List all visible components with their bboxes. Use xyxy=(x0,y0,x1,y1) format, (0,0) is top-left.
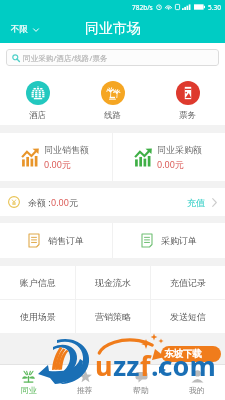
staticText: 同业 xyxy=(21,385,37,395)
button[interactable]: 推荐 xyxy=(57,364,113,400)
staticText: 同业采购/酒店/线路/票务 xyxy=(23,53,108,63)
staticText: 发送短信 xyxy=(170,311,206,322)
staticText: 0.00 xyxy=(51,196,69,208)
button[interactable]: 充值 xyxy=(184,193,220,212)
staticText: 使用场景 xyxy=(20,311,56,322)
staticText: zz xyxy=(113,347,140,384)
button[interactable]: 帮助 xyxy=(113,364,169,400)
staticText: 余额 : xyxy=(28,196,51,208)
staticText: 同业销售额 xyxy=(44,144,89,155)
button[interactable]: 营销策略 xyxy=(76,300,150,333)
button[interactable]: 同业 xyxy=(0,364,57,400)
button[interactable]: 充值记录 xyxy=(151,266,225,299)
staticText: 酒店 xyxy=(29,110,46,121)
staticText: 不限 xyxy=(11,24,28,35)
staticText: 推荐 xyxy=(77,385,93,395)
staticText: 营销策略 xyxy=(95,311,131,322)
staticText: 同业采购额 xyxy=(157,144,202,155)
staticText: 账户信息 xyxy=(20,277,56,288)
staticText: 充值记录 xyxy=(170,277,206,288)
staticText: 同业市场 xyxy=(85,20,141,38)
button[interactable]: 发送短信 xyxy=(151,300,225,333)
staticText: 帮助 xyxy=(133,385,149,395)
button[interactable]: 同业销售额 xyxy=(0,133,112,181)
staticText: 我的 xyxy=(189,385,205,395)
staticText: 票务 xyxy=(179,110,196,121)
staticText: 充值 xyxy=(187,197,205,208)
button[interactable]: 酒店 xyxy=(0,67,75,125)
staticText: f xyxy=(140,347,151,384)
button[interactable]: 同业采购/酒店/线路/票务 xyxy=(6,49,219,66)
staticText: .com xyxy=(151,347,216,384)
staticText: 0.00元 xyxy=(157,158,184,170)
staticText: 782b/s xyxy=(132,3,153,12)
staticText: 现金流水 xyxy=(95,277,131,288)
staticText: 元 xyxy=(69,197,78,208)
button[interactable]: 我的 xyxy=(169,364,225,400)
button[interactable]: 销售订单 xyxy=(0,223,112,258)
button[interactable]: 线路 xyxy=(75,67,150,125)
staticText: 5.30 xyxy=(208,3,221,12)
button[interactable]: 采购订单 xyxy=(113,223,225,258)
staticText: 东坡下载 xyxy=(164,348,202,360)
button[interactable]: 不限 xyxy=(8,20,42,39)
button[interactable]: 账户信息 xyxy=(0,266,75,299)
button[interactable]: 现金流水 xyxy=(76,266,150,299)
staticText: u xyxy=(95,347,113,384)
button[interactable]: 同业采购额 xyxy=(113,133,225,181)
button[interactable]: 使用场景 xyxy=(0,300,75,333)
staticText: 线路 xyxy=(104,110,121,121)
staticText: 采购订单 xyxy=(161,235,197,246)
staticText: 0.00元 xyxy=(44,158,71,170)
button[interactable]: 票务 xyxy=(150,67,225,125)
staticText: 销售订单 xyxy=(48,235,84,246)
